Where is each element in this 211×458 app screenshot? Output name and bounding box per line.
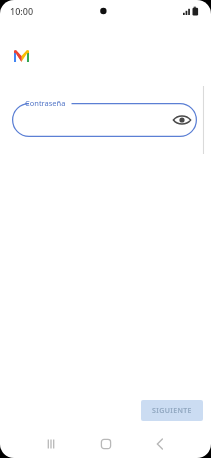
staticText: 10:00	[10, 5, 34, 17]
staticText: Contraseña	[25, 98, 66, 108]
staticText: SIGUIENTE	[152, 406, 192, 416]
button[interactable]: Atrás	[147, 431, 173, 457]
button[interactable]: Inicio	[93, 431, 119, 457]
button[interactable]: SIGUIENTE	[141, 400, 203, 421]
button[interactable]: Recientes	[38, 431, 64, 457]
button[interactable]: Mostrar contraseña	[171, 109, 193, 131]
button[interactable]: Mostrar contraseña	[12, 103, 197, 137]
